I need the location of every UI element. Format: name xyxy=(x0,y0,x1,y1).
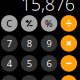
button[interactable]: 6 xyxy=(41,55,57,72)
staticText: 8 xyxy=(27,37,32,50)
button[interactable]: 9 xyxy=(41,35,57,52)
button[interactable]: 4 xyxy=(1,55,18,72)
staticText: 7 xyxy=(7,37,12,50)
button[interactable]: 3 xyxy=(41,75,57,80)
staticText: 4 xyxy=(7,57,12,70)
button[interactable]: 8 xyxy=(21,35,37,52)
button[interactable]: Clear xyxy=(1,15,18,32)
button[interactable]: Plus xyxy=(60,75,77,80)
staticText: 6 xyxy=(47,57,52,70)
staticText: 9 xyxy=(47,37,52,50)
staticText: % xyxy=(45,17,53,30)
button[interactable]: 7 xyxy=(1,35,18,52)
button[interactable]: 5 xyxy=(21,55,37,72)
staticText: 15,876 xyxy=(21,0,75,15)
button[interactable]: 2 xyxy=(21,75,37,80)
button[interactable]: Multiply xyxy=(60,35,77,52)
button[interactable]: Minus xyxy=(60,55,77,72)
button[interactable]: Percent xyxy=(41,15,57,32)
staticText: 5 xyxy=(27,57,32,70)
button[interactable]: Divide xyxy=(60,15,77,32)
button[interactable]: Plus minus xyxy=(21,15,37,32)
button[interactable]: 1 xyxy=(1,75,18,80)
staticText: C xyxy=(6,17,12,30)
